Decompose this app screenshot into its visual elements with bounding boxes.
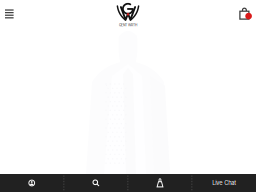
button[interactable]: Cart	[128, 174, 191, 192]
button[interactable]: Live Chat	[192, 174, 256, 192]
button[interactable]: Account	[0, 174, 63, 192]
staticText: Live Chat	[212, 179, 236, 186]
button[interactable]: Cart	[230, 1, 256, 27]
button[interactable]: Menu	[0, 1, 26, 27]
button[interactable]: Search	[64, 174, 127, 192]
staticText: GENT WRTH	[119, 23, 137, 27]
